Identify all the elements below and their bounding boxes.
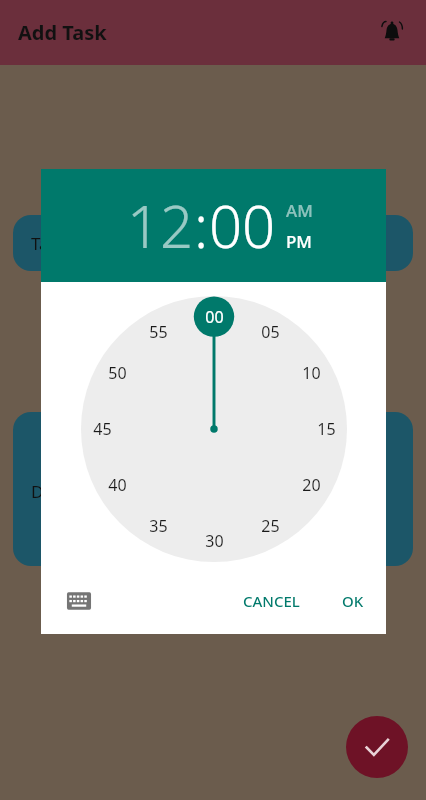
button[interactable]: Notifications [370,11,414,55]
staticText: 05 [261,321,280,343]
staticText: : [194,186,209,265]
staticText: AM [286,199,313,222]
staticText: CANCEL [243,591,300,611]
button[interactable]: Save task [346,716,408,778]
button[interactable]: 00 [209,186,276,265]
staticText: 00 [205,306,224,328]
button[interactable]: Task Title [13,215,413,271]
button[interactable]: Switch to text input [59,581,99,621]
staticText: 50 [108,362,127,384]
staticText: 20 [302,474,321,496]
staticText: 35 [149,515,168,537]
staticText: 55 [149,321,168,343]
staticText: 10 [302,362,321,384]
staticText: 45 [93,418,112,440]
button[interactable]: OK [332,583,374,619]
button[interactable]: Description [13,412,413,566]
button[interactable]: AM [286,199,313,222]
staticText: OK [342,591,364,611]
staticText: 15 [317,418,336,440]
staticText: Description [31,480,123,503]
staticText: 12 [127,186,194,265]
button[interactable]: PM [286,230,312,253]
button[interactable]: 12 [127,186,194,265]
staticText: 25 [261,515,280,537]
staticText: 30 [205,530,224,552]
staticText: 40 [108,474,127,496]
button[interactable]: 00 [81,296,347,562]
staticText: Add Task [18,19,107,46]
button[interactable]: CANCEL [233,583,310,619]
staticText: 00 [209,186,276,265]
staticText: PM [286,230,312,253]
staticText: Task Title [31,232,105,255]
